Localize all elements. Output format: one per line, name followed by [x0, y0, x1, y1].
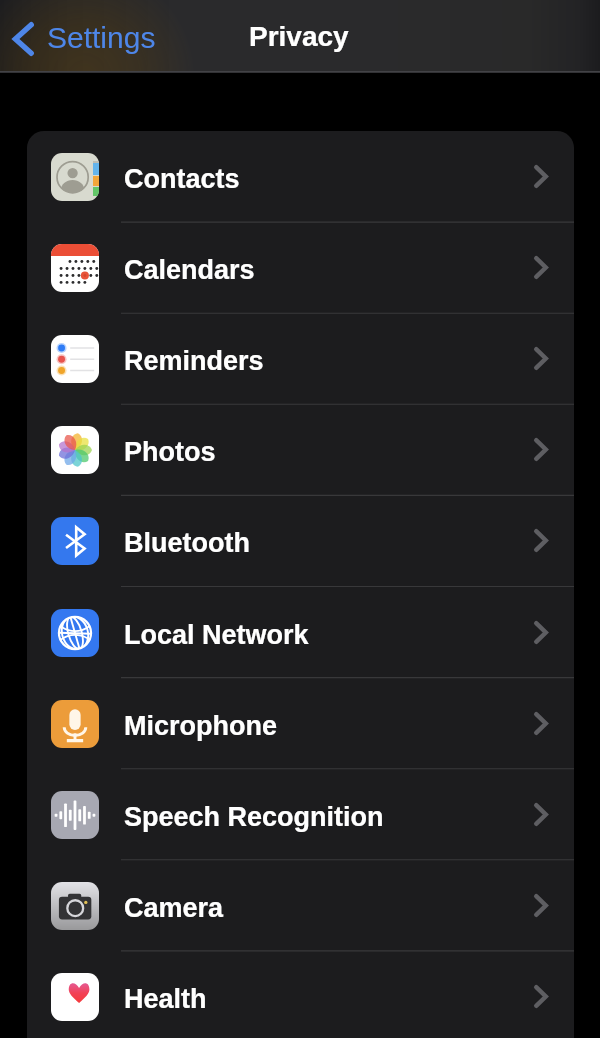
- button[interactable]: Reminders: [27, 313, 574, 404]
- staticText: Microphone: [124, 711, 277, 741]
- button[interactable]: Photos: [27, 404, 574, 495]
- staticText: Camera: [124, 893, 224, 923]
- staticText: Speech Recognition: [124, 802, 384, 832]
- staticText: Settings: [47, 21, 156, 55]
- staticText: Reminders: [124, 346, 264, 376]
- button[interactable]: Speech Recognition: [27, 769, 574, 860]
- button[interactable]: Bluetooth: [27, 495, 574, 586]
- button[interactable]: Contacts: [27, 131, 574, 222]
- staticText: Health: [124, 984, 207, 1014]
- button[interactable]: Local Network: [27, 587, 574, 678]
- staticText: Calendars: [124, 255, 255, 285]
- staticText: Contacts: [124, 164, 240, 194]
- staticText: Photos: [124, 437, 216, 467]
- button[interactable]: Back to Settings: [0, 14, 170, 60]
- button[interactable]: Microphone: [27, 678, 574, 769]
- button[interactable]: Camera: [27, 860, 574, 951]
- staticText: Privacy: [249, 21, 349, 52]
- button[interactable]: Calendars: [27, 222, 574, 313]
- staticText: Bluetooth: [124, 528, 250, 558]
- button[interactable]: Health: [27, 951, 574, 1038]
- staticText: Local Network: [124, 620, 309, 650]
